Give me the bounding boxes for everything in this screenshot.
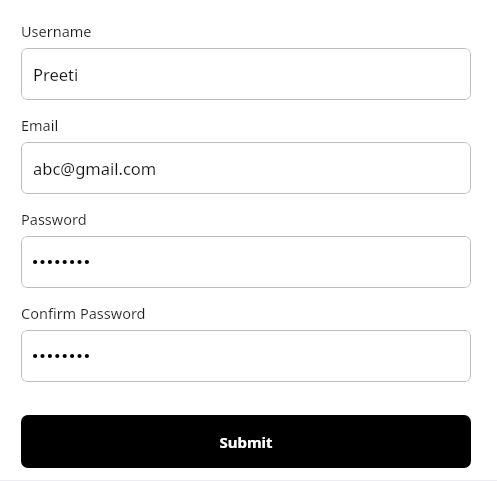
- staticText: Password: [21, 209, 87, 229]
- staticText: Confirm Password: [21, 303, 146, 323]
- staticText: Username: [21, 21, 92, 41]
- button[interactable]: abc@gmail.com: [21, 142, 471, 194]
- staticText: abc@gmail.com: [33, 157, 157, 179]
- staticText: Preeti: [33, 63, 79, 85]
- button[interactable]: Submit: [21, 415, 471, 468]
- button[interactable]: [21, 236, 471, 288]
- staticText: Email: [21, 115, 59, 135]
- button[interactable]: Preeti: [21, 48, 471, 100]
- button[interactable]: [21, 330, 471, 382]
- staticText: Submit: [219, 432, 273, 452]
